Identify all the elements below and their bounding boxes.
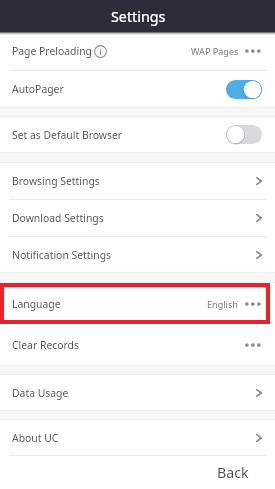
button[interactable]: Notification Settings [0,237,275,272]
other: Open [256,175,262,187]
button[interactable]: Download Settings [0,200,275,236]
button[interactable]: Set as Default Browser [0,117,275,152]
staticText: Download Settings [12,211,104,225]
staticText: English [207,298,238,310]
staticText: WAP Pages [191,45,239,57]
other: Open [256,212,262,224]
staticText: Language [12,297,61,311]
other: More options [245,298,262,310]
staticText: AutoPager [12,82,64,96]
staticText: Clear Records [12,338,79,352]
other: More options [245,45,262,57]
button[interactable]: Clear Records [0,324,275,365]
other: Open [256,432,262,444]
button[interactable]: Data Usage [0,375,275,410]
button[interactable]: Language [0,283,275,324]
button[interactable]: AutoPager [0,71,275,107]
button[interactable]: About UC [0,420,275,455]
button[interactable]: Page Preloading [0,32,275,70]
staticText: Set as Default Browser [12,128,123,142]
staticText: Browsing Settings [12,174,100,188]
staticText: Settings [111,7,166,26]
staticText: Data Usage [12,386,69,400]
other: Open [256,249,262,261]
other: Open [256,387,262,399]
staticText: Page Preloading [12,44,92,58]
other: More options [245,339,262,351]
staticText: Notification Settings [12,248,112,262]
button[interactable]: Off [226,125,262,144]
other: Info [94,45,107,58]
button[interactable]: Back [197,456,275,489]
button[interactable]: Browsing Settings [0,163,275,199]
staticText: About UC [12,431,59,445]
staticText: Back [217,463,249,482]
button[interactable]: On [226,80,262,99]
